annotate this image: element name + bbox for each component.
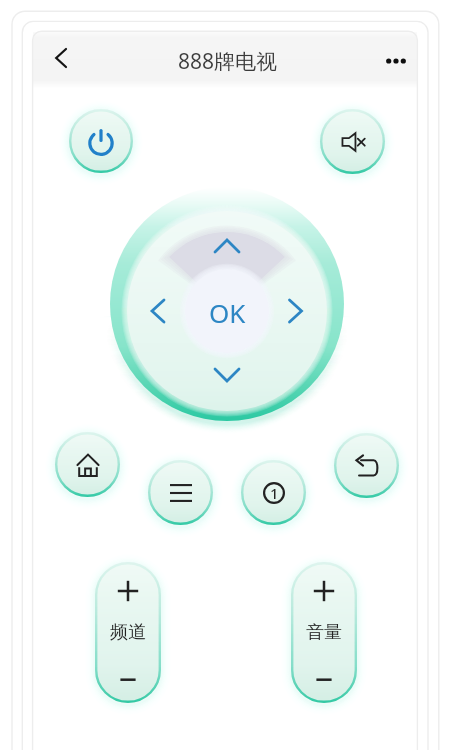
button[interactable]: Back (42, 40, 78, 76)
staticText: OK (209, 295, 246, 330)
staticText: 888牌电视 (178, 47, 278, 76)
button[interactable]: Menu (138, 450, 223, 535)
staticText: 1 (270, 483, 279, 503)
button[interactable]: Number one (231, 450, 316, 535)
button[interactable]: 频道 (85, 552, 171, 713)
staticText: 音量 (306, 621, 342, 644)
button[interactable]: More options (378, 43, 414, 79)
staticText: 频道 (110, 621, 146, 644)
button[interactable]: Power (59, 99, 143, 183)
button[interactable]: Back (324, 423, 409, 508)
button[interactable]: Mute (310, 99, 395, 184)
button[interactable]: 音量 (281, 552, 367, 713)
button[interactable]: Home (45, 422, 130, 507)
